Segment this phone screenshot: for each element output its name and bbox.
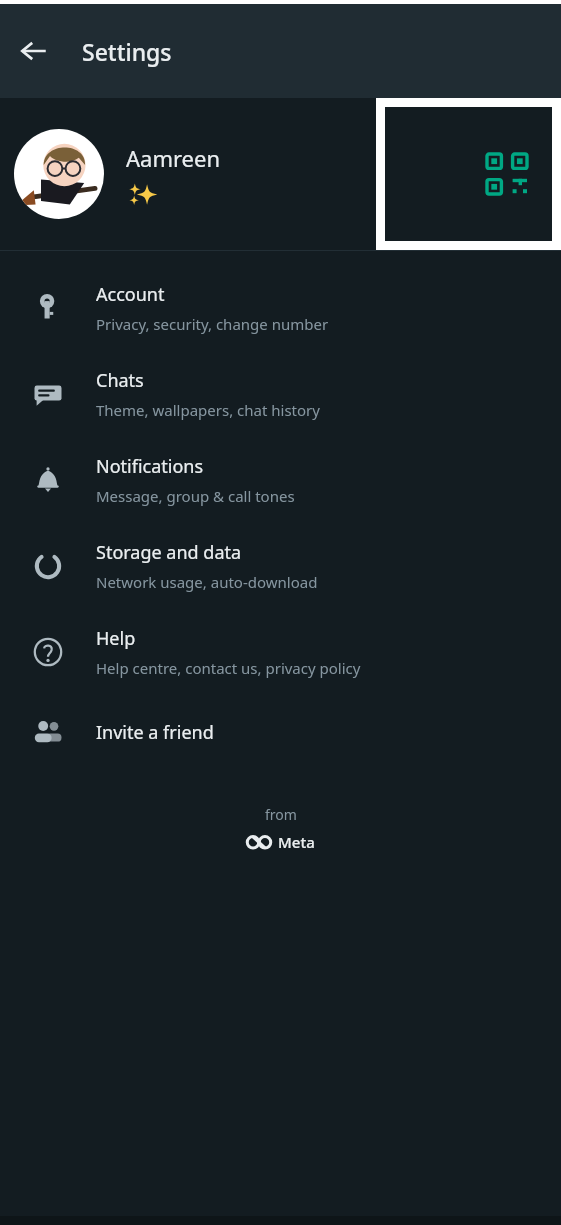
staticText: Privacy, security, change number (96, 314, 329, 334)
staticText: Aamreen (126, 143, 221, 173)
staticText: Settings (82, 36, 172, 67)
button[interactable]: Storage and data (0, 523, 561, 609)
staticText: Invite a friend (96, 720, 214, 745)
staticText: Network usage, auto-download (96, 572, 318, 592)
staticText: from (265, 805, 297, 824)
staticText: Chats (96, 368, 144, 393)
staticText: Theme, wallpapers, chat history (96, 400, 320, 420)
button[interactable]: Account (0, 265, 561, 351)
button[interactable]: Chats (0, 351, 561, 437)
staticText: Help centre, contact us, privacy policy (96, 658, 361, 678)
button[interactable]: Help (0, 609, 561, 695)
staticText: Storage and data (96, 540, 242, 565)
staticText: Notifications (96, 454, 204, 479)
staticText: Meta (278, 832, 315, 852)
staticText: Help (96, 626, 136, 651)
button[interactable]: Aamreen (0, 98, 561, 250)
button[interactable]: QR code (385, 107, 552, 241)
staticText: Message, group & call tones (96, 486, 295, 506)
staticText: Account (96, 282, 165, 307)
button[interactable]: Back (8, 25, 60, 77)
button[interactable]: Invite a friend (0, 695, 561, 769)
button[interactable]: Notifications (0, 437, 561, 523)
